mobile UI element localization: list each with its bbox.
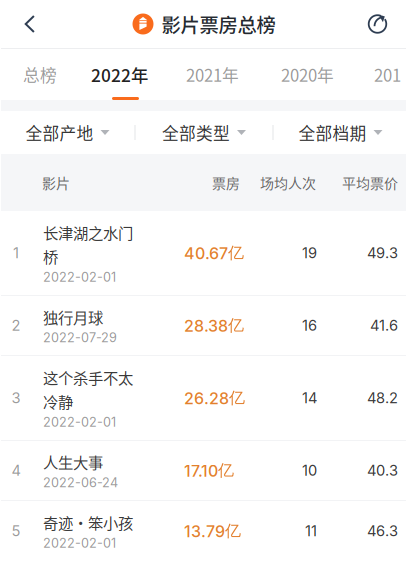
staticText: 4: [11, 462, 20, 479]
button[interactable]: 2020年: [281, 49, 374, 100]
button[interactable]: 2: [1, 296, 406, 356]
staticText: 3: [11, 389, 20, 407]
button[interactable]: 总榜: [0, 49, 91, 100]
staticText: 2022-02-01: [43, 414, 116, 430]
button[interactable]: Share: [349, 0, 406, 48]
staticText: 场均人次: [260, 172, 316, 193]
staticText: 2020年: [281, 62, 334, 86]
staticText: 平均票价: [342, 172, 398, 193]
staticText: 2022-06-24: [43, 475, 118, 490]
button[interactable]: 全部档期: [273, 111, 406, 154]
staticText: 桥: [43, 245, 58, 267]
staticText: 46.3: [367, 522, 398, 540]
staticText: 这个杀手不太: [43, 366, 133, 388]
staticText: 1: [13, 244, 19, 262]
staticText: 5: [11, 522, 20, 540]
button[interactable]: 1: [1, 211, 406, 296]
staticText: 11: [305, 522, 317, 540]
staticText: 独行月球: [43, 306, 103, 328]
staticText: 全部类型: [162, 120, 230, 144]
staticText: 26.28亿: [184, 388, 245, 408]
staticText: 19: [302, 244, 317, 262]
button[interactable]: 2022年: [91, 49, 186, 100]
staticText: 影片: [42, 172, 70, 193]
staticText: 40.67亿: [184, 243, 244, 263]
staticText: 2022-02-01: [43, 535, 116, 551]
staticText: 全部产地: [25, 120, 93, 144]
button[interactable]: 201: [374, 49, 406, 100]
button[interactable]: 3: [1, 356, 406, 441]
staticText: 2: [11, 317, 20, 334]
staticText: 影片票房总榜: [161, 10, 275, 38]
staticText: 14: [302, 389, 317, 407]
staticText: 冷静: [43, 390, 73, 412]
staticText: 10: [302, 462, 317, 479]
button[interactable]: Back: [1, 0, 59, 48]
button[interactable]: 5: [1, 501, 406, 561]
staticText: 全部档期: [298, 120, 366, 144]
staticText: 2022年: [91, 62, 148, 87]
staticText: 28.38亿: [184, 315, 244, 336]
staticText: 40.3: [367, 462, 398, 479]
staticText: 2022-02-01: [43, 269, 116, 285]
staticText: 长津湖之水门: [43, 221, 133, 243]
staticText: 48.2: [367, 389, 398, 407]
staticText: 奇迹·笨小孩: [43, 511, 133, 533]
button[interactable]: 2021年: [186, 49, 281, 100]
staticText: 41.6: [370, 317, 398, 334]
staticText: 16: [302, 317, 317, 334]
staticText: 2021年: [186, 62, 239, 86]
staticText: 17.10亿: [184, 460, 234, 481]
staticText: 2022-07-29: [43, 330, 117, 345]
staticText: 49.3: [367, 244, 398, 262]
staticText: 票房: [212, 172, 240, 193]
staticText: 201: [374, 62, 401, 86]
button[interactable]: 4: [1, 441, 406, 501]
button[interactable]: 全部产地: [0, 111, 134, 154]
staticText: 13.79亿: [184, 521, 241, 541]
staticText: 总榜: [23, 62, 57, 86]
staticText: 人生大事: [43, 451, 103, 473]
button[interactable]: 全部类型: [135, 111, 272, 154]
